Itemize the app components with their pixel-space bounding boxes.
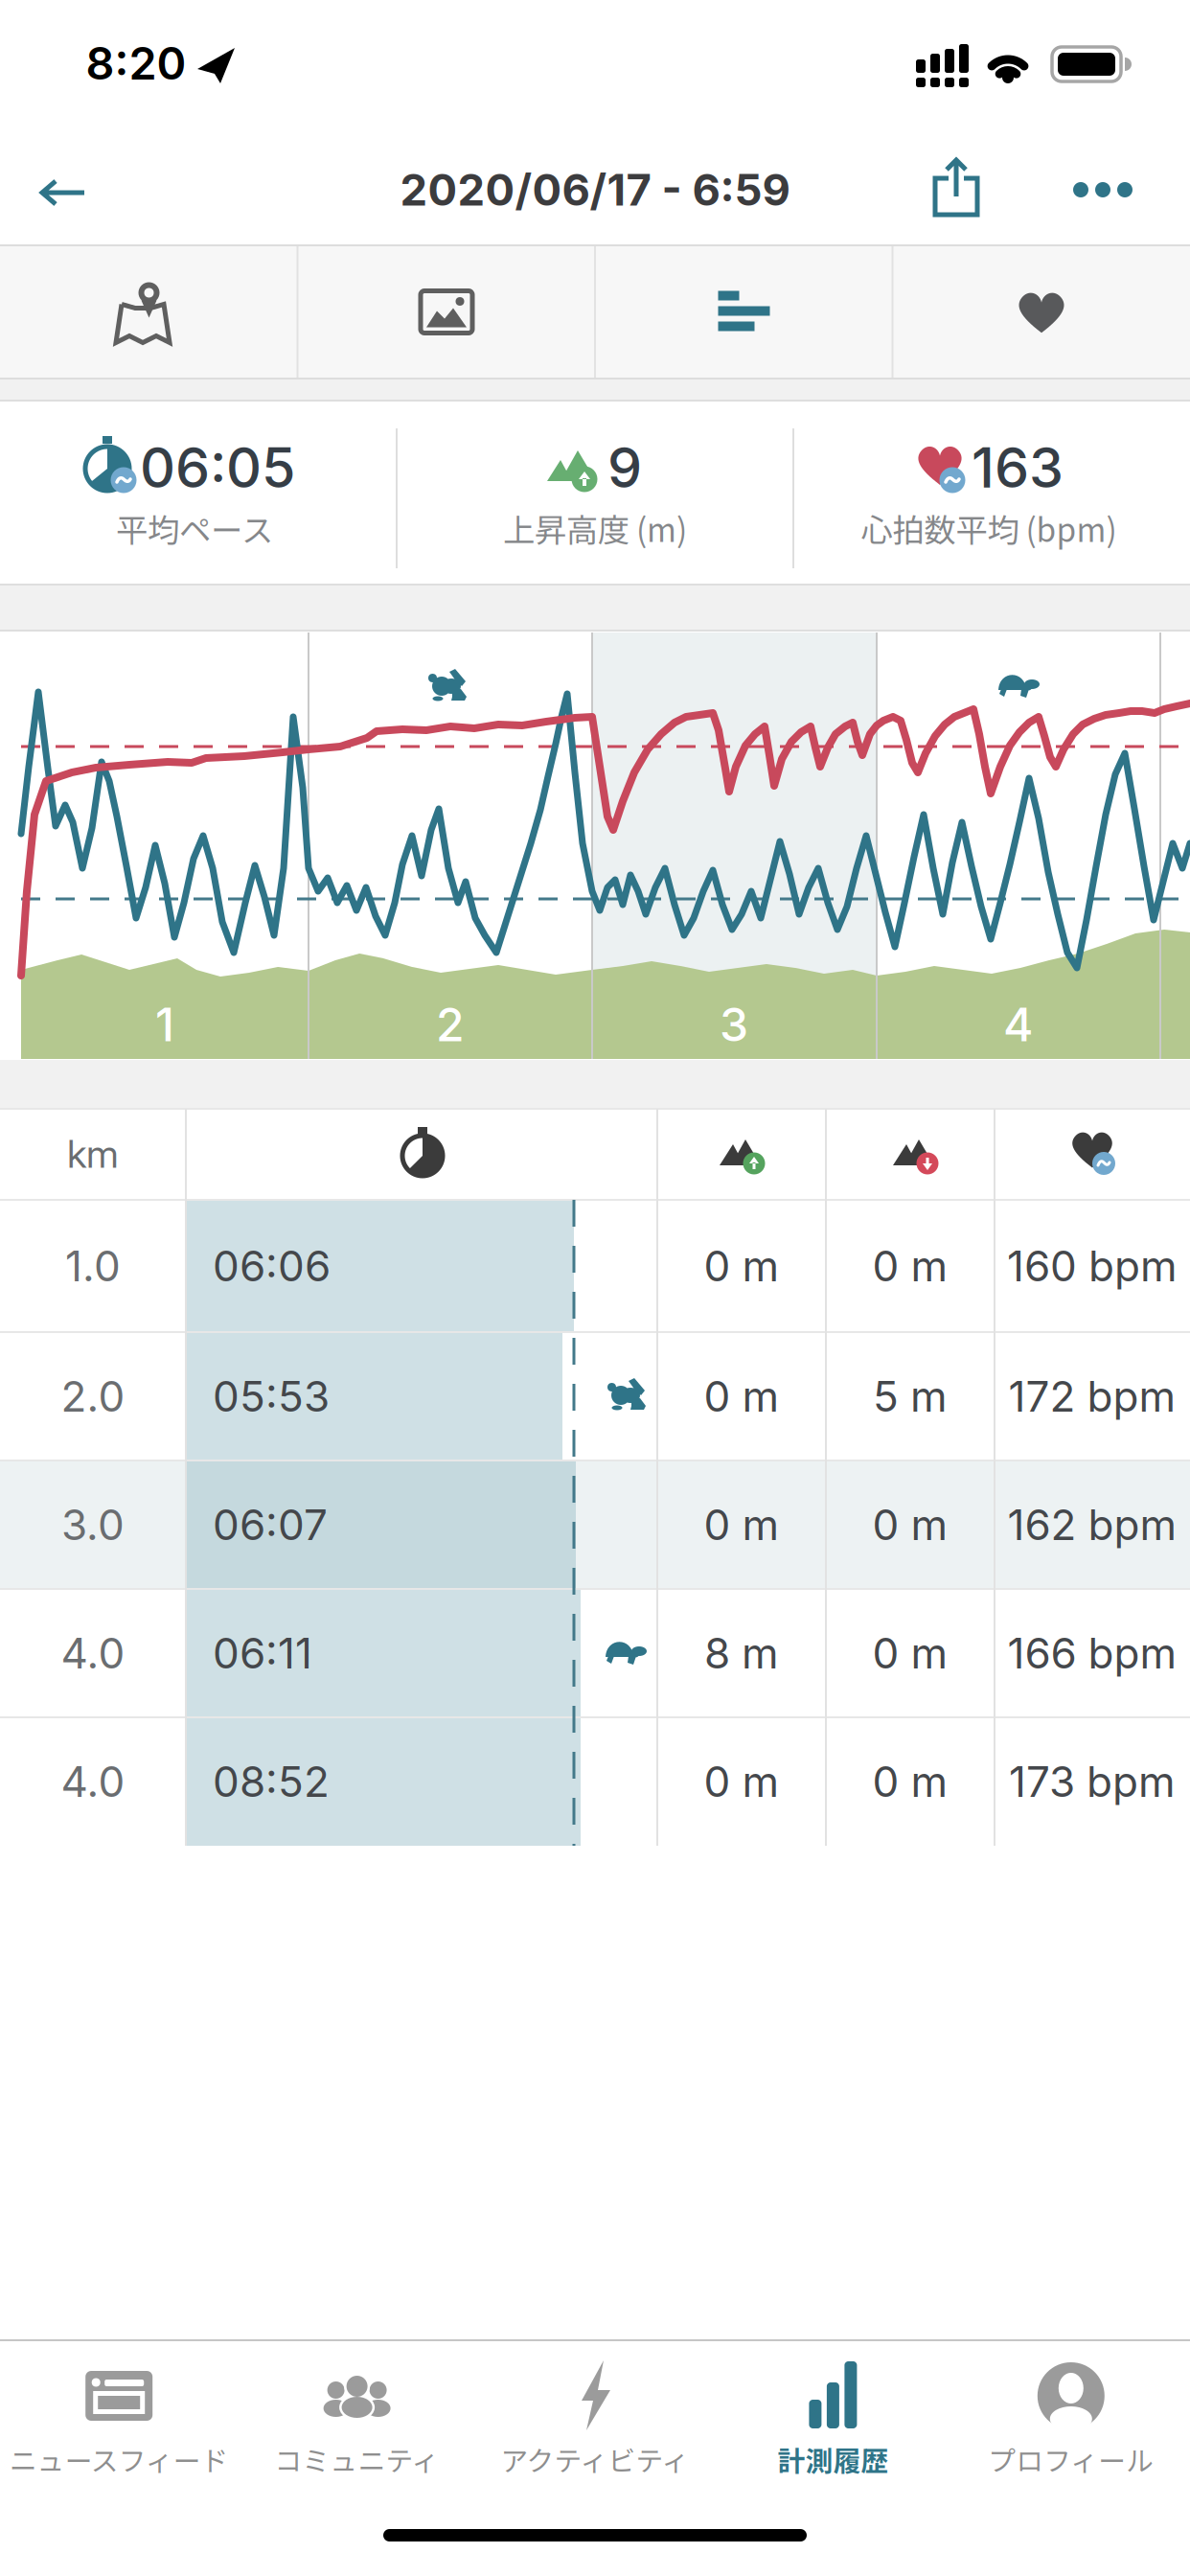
staticText: 3 <box>720 997 748 1052</box>
staticText: プロフィール <box>988 2439 1154 2479</box>
staticText: 06:07 <box>213 1499 328 1550</box>
staticText: 05:53 <box>213 1371 330 1422</box>
staticText: 9 <box>607 434 642 501</box>
staticText: 5 m <box>873 1371 948 1422</box>
staticText: 06:06 <box>213 1240 331 1291</box>
staticText: 2020/06/17 - 6:59 <box>400 163 790 216</box>
staticText: コミュニティ <box>275 2439 439 2479</box>
staticText: 0 m <box>872 1756 948 1807</box>
staticText: 06:11 <box>213 1628 312 1679</box>
button[interactable]: Map <box>1 247 296 377</box>
button[interactable]: Share <box>910 141 1002 233</box>
staticText: 上昇高度 (m) <box>503 505 687 551</box>
button[interactable]: アクティビティ <box>476 2351 714 2495</box>
staticText: 4.0 <box>61 1628 125 1679</box>
staticText: 0 m <box>704 1756 779 1807</box>
button[interactable]: 計測履歴 <box>714 2351 952 2495</box>
staticText: km <box>67 1131 119 1177</box>
staticText: 3.0 <box>61 1499 125 1550</box>
staticText: 4.0 <box>61 1756 125 1807</box>
staticText: 8 m <box>704 1628 779 1679</box>
staticText: 0 m <box>872 1628 948 1679</box>
button[interactable]: コミュニティ <box>238 2351 476 2495</box>
button[interactable]: ニュースフィード <box>0 2351 238 2495</box>
button[interactable]: Stats <box>596 247 892 377</box>
staticText: 2 <box>436 997 465 1052</box>
staticText: 計測履歴 <box>777 2439 889 2479</box>
staticText: 2.0 <box>61 1371 125 1422</box>
staticText: 163 <box>972 434 1064 501</box>
staticText: 0 m <box>704 1240 779 1291</box>
staticText: ニュースフィード <box>9 2439 229 2479</box>
staticText: 0 m <box>704 1499 779 1550</box>
staticText: 166 bpm <box>1007 1628 1177 1679</box>
button[interactable]: Photos <box>299 247 594 377</box>
staticText: 0 m <box>872 1499 948 1550</box>
staticText: 172 bpm <box>1008 1371 1176 1422</box>
staticText: 173 bpm <box>1009 1756 1176 1807</box>
staticText: 0 m <box>872 1240 948 1291</box>
button[interactable]: プロフィール <box>952 2351 1190 2495</box>
button[interactable]: Back <box>11 149 116 236</box>
button[interactable]: Likes <box>894 247 1189 377</box>
staticText: 0 m <box>704 1371 779 1422</box>
staticText: 1.0 <box>65 1240 121 1291</box>
staticText: 心拍数平均 (bpm) <box>861 505 1117 551</box>
staticText: 平均ペース <box>116 505 273 551</box>
staticText: 160 bpm <box>1007 1240 1178 1291</box>
staticText: 162 bpm <box>1007 1499 1177 1550</box>
staticText: 1 <box>155 997 174 1052</box>
staticText: 8:20 <box>86 36 186 90</box>
staticText: 08:52 <box>213 1756 330 1807</box>
button[interactable]: More <box>1055 147 1151 233</box>
staticText: 4 <box>1003 997 1034 1052</box>
staticText: アクティビティ <box>501 2439 689 2479</box>
staticText: 06:05 <box>140 434 295 501</box>
